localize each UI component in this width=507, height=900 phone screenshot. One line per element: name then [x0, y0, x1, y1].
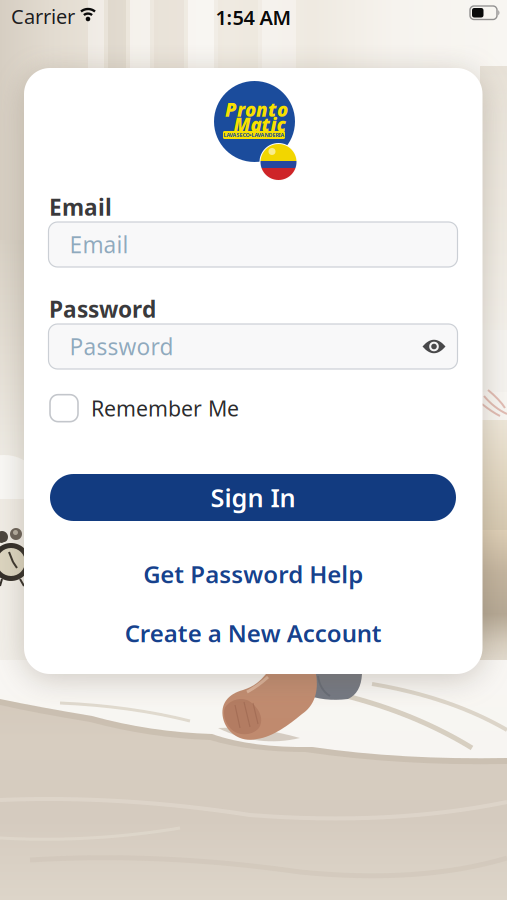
staticText: Sign In	[210, 481, 295, 514]
staticText: Matic	[233, 112, 285, 137]
staticText: 1:54 AM	[215, 4, 291, 31]
button[interactable]: Password	[48, 324, 457, 369]
staticText: Create a New Account	[125, 617, 382, 649]
button[interactable]: Remember Me	[50, 394, 239, 422]
staticText: LAVASECO•LAVANDERIA	[223, 131, 284, 139]
button[interactable]: Sign In	[50, 474, 456, 521]
button[interactable]: Get Password Help	[143, 558, 363, 590]
staticText: Remember Me	[91, 394, 239, 422]
staticText: Password	[49, 294, 156, 324]
button[interactable]: Create a New Account	[125, 617, 382, 649]
staticText: Carrier	[11, 3, 75, 30]
staticText: Password	[69, 331, 173, 361]
staticText: Email	[49, 192, 112, 222]
button[interactable]: Email	[48, 222, 457, 267]
staticText: Email	[69, 229, 128, 259]
staticText: Get Password Help	[143, 558, 363, 590]
staticText: Pronto	[225, 97, 288, 122]
button[interactable]: Show password	[416, 332, 451, 360]
